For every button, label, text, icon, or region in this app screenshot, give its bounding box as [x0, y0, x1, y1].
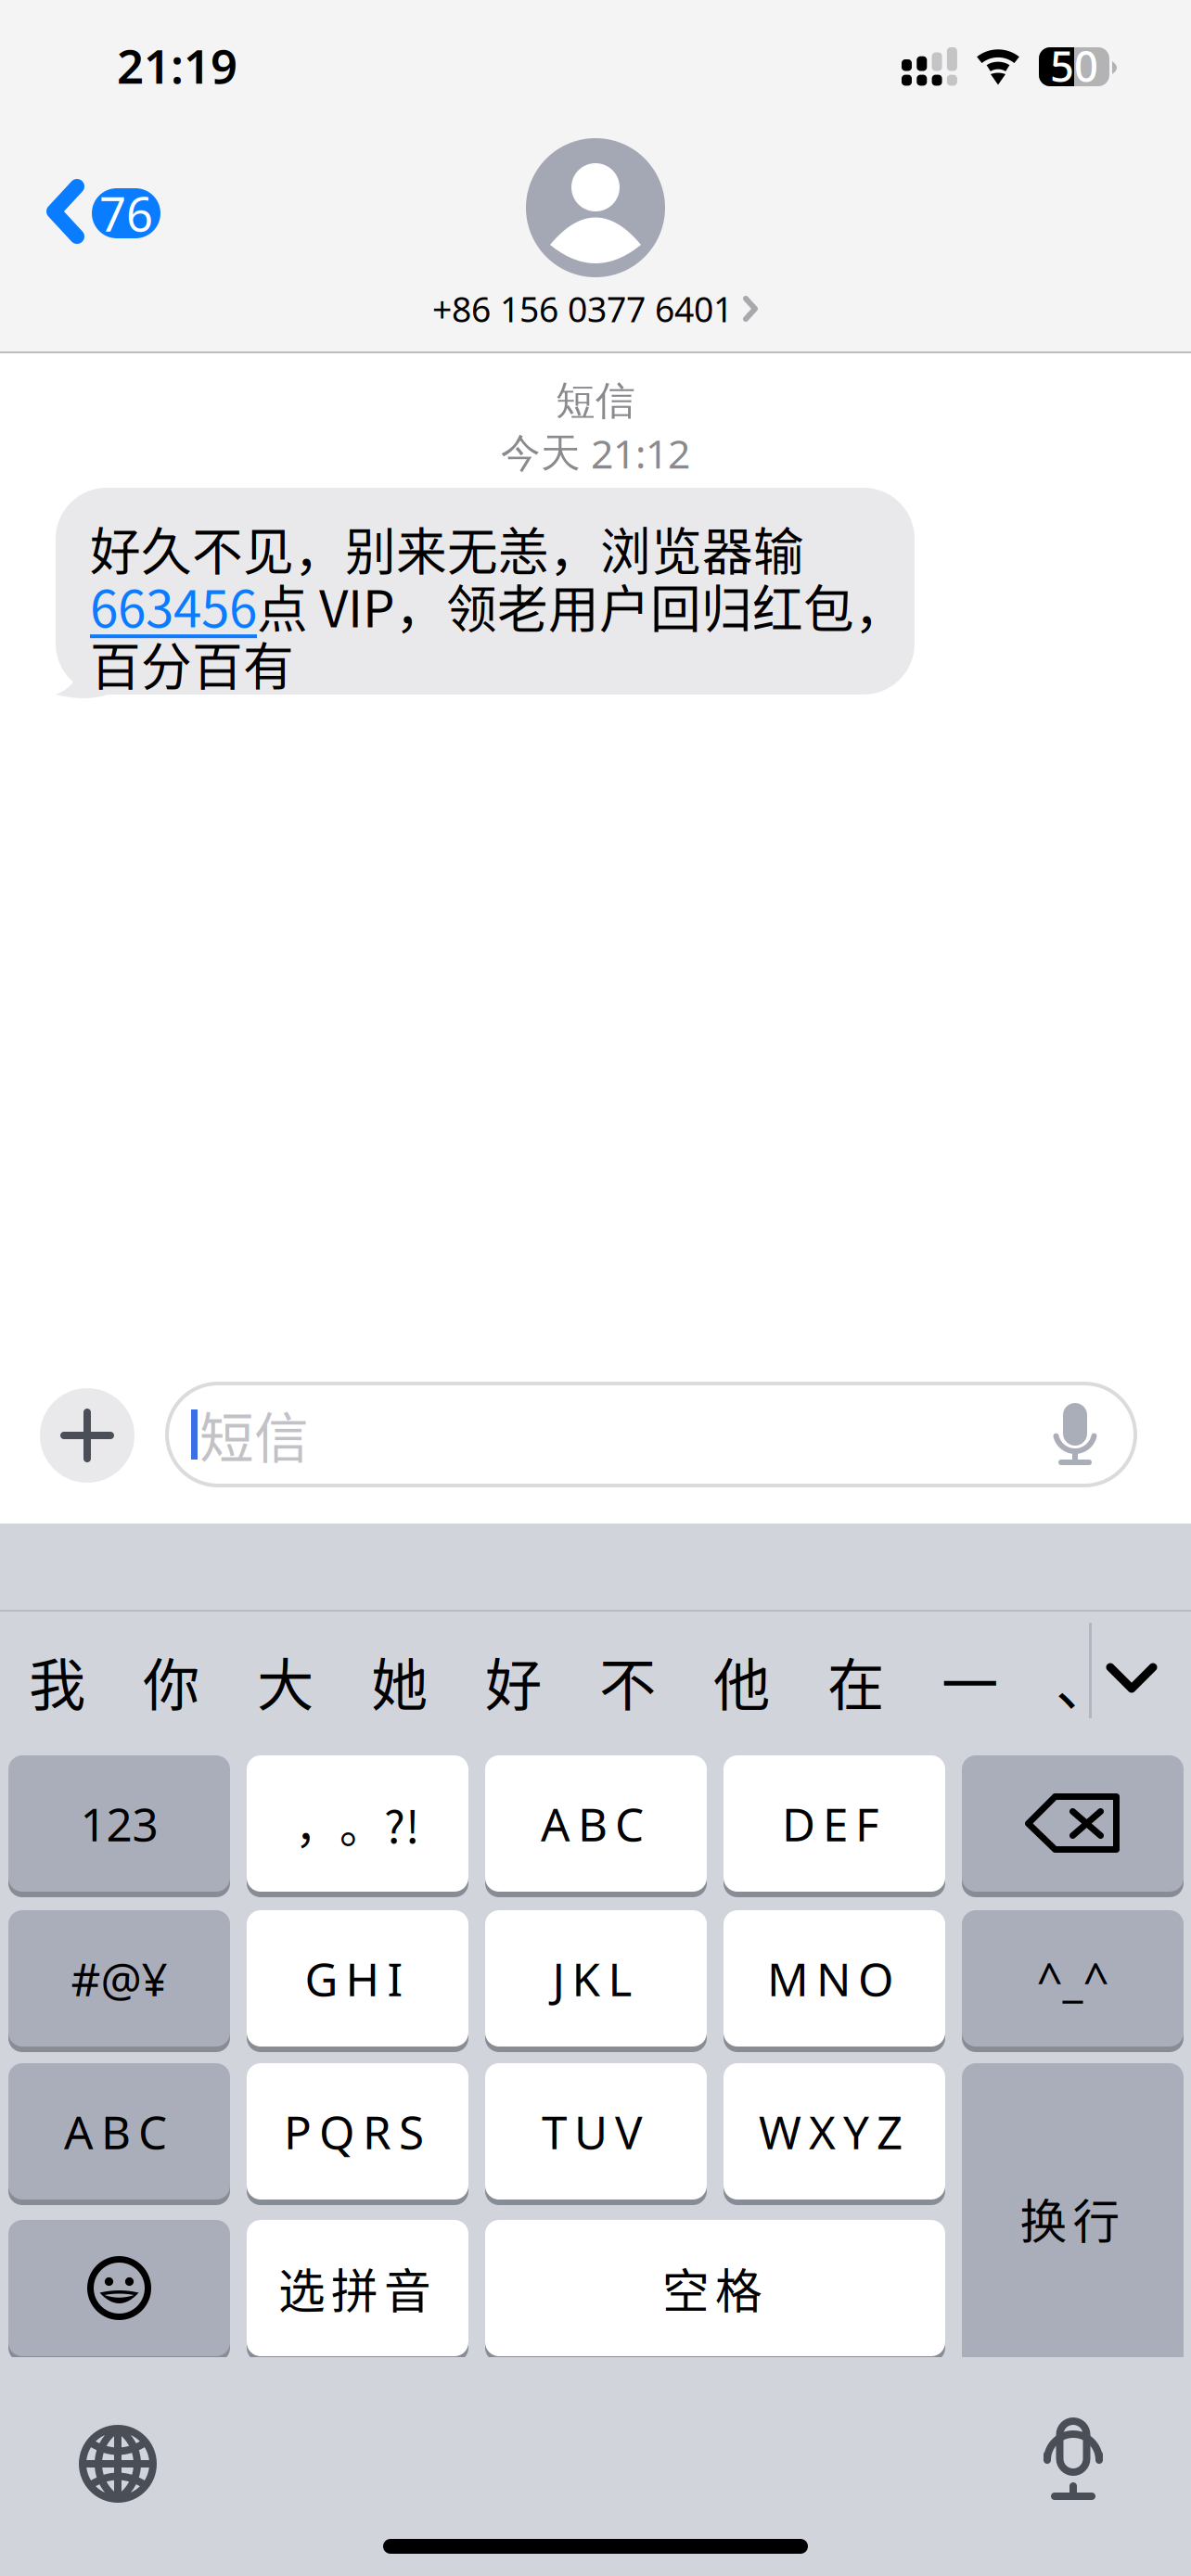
button[interactable]: ，。?! [247, 1755, 468, 1897]
staticText: ^_^ [1037, 1948, 1109, 2009]
button[interactable]: PQRS [247, 2063, 468, 2205]
staticText: TUV [542, 2101, 643, 2162]
button[interactable]: Message text field [167, 1384, 1135, 1486]
staticText: 百分百有 [90, 626, 294, 699]
button[interactable]: 我 [0, 1626, 114, 1737]
button[interactable]: 大 [228, 1626, 342, 1737]
button[interactable]: JKL [485, 1910, 707, 2052]
staticText: 在 [827, 1640, 884, 1722]
button[interactable]: ABC [8, 2063, 230, 2205]
staticText: 短信 [556, 376, 635, 425]
staticText: JKL [552, 1948, 632, 2009]
button[interactable]: 、 [1027, 1626, 1141, 1737]
staticText: #@¥ [71, 1948, 167, 2009]
staticText: 选拼音 [278, 2254, 431, 2322]
staticText: 一 [941, 1640, 998, 1722]
staticText: 50 [1050, 38, 1098, 94]
staticText: 他 [713, 1640, 770, 1722]
staticText: DEF [782, 1793, 879, 1854]
button[interactable]: 换行 [962, 2063, 1184, 2379]
button[interactable]: Dictation [1016, 2402, 1131, 2517]
staticText: +86 156 0377 6401 [432, 286, 733, 332]
staticText: 点 VIP，领老用户回归红包， [257, 568, 905, 642]
button[interactable]: TUV [485, 2063, 707, 2205]
staticText: 21:12 [591, 427, 690, 479]
button[interactable]: 123 [8, 1755, 230, 1897]
staticText: 76 [99, 182, 153, 245]
staticText: 你 [143, 1640, 199, 1722]
button[interactable]: Switch keyboard [60, 2406, 175, 2521]
button[interactable]: #@¥ [8, 1910, 230, 2052]
staticText: 123 [80, 1793, 158, 1854]
staticText: PQRS [284, 2101, 424, 2162]
staticText: WXYZ [759, 2101, 903, 2162]
staticText: ，。?! [295, 1791, 420, 1856]
button[interactable]: 不 [570, 1626, 685, 1737]
button[interactable]: 好 [456, 1626, 570, 1737]
button[interactable]: ^_^ [962, 1910, 1184, 2052]
staticText: 不 [599, 1640, 656, 1722]
button[interactable]: Hide keyboard [1086, 1626, 1179, 1737]
staticText: 21:19 [117, 34, 237, 97]
staticText: 我 [29, 1640, 85, 1722]
button[interactable]: DEF [724, 1755, 945, 1897]
staticText: 663456 [90, 568, 257, 642]
button[interactable]: 空格 [485, 2220, 945, 2362]
button[interactable]: 一 [913, 1626, 1027, 1737]
staticText: 她 [371, 1640, 428, 1722]
staticText: 换行 [1020, 2184, 1120, 2253]
staticText: ABC [64, 2101, 167, 2162]
staticText: 今天 [501, 429, 581, 477]
button[interactable]: +86 156 0377 6401 [410, 134, 781, 329]
staticText: 好 [485, 1640, 542, 1722]
staticText: 、 [1056, 1640, 1112, 1722]
button[interactable]: 选拼音 [247, 2220, 468, 2362]
button[interactable]: 76 [44, 168, 192, 270]
button[interactable]: GHI [247, 1910, 468, 2052]
button[interactable]: ABC [485, 1755, 707, 1897]
staticText: 短信 [199, 1395, 309, 1474]
staticText: MNO [767, 1948, 894, 2009]
staticText: ABC [541, 1793, 644, 1854]
button[interactable]: Emoji [8, 2220, 230, 2362]
button[interactable]: 她 [342, 1626, 456, 1737]
button[interactable]: 你 [114, 1626, 228, 1737]
button[interactable]: 他 [685, 1626, 799, 1737]
staticText: 好久不见，别来无恙，浏览器输 [90, 511, 804, 584]
staticText: 大 [257, 1640, 314, 1722]
button[interactable]: More options [40, 1388, 134, 1483]
button[interactable]: 在 [799, 1626, 913, 1737]
button[interactable]: WXYZ [724, 2063, 945, 2205]
button[interactable]: MNO [724, 1910, 945, 2052]
staticText: GHI [305, 1948, 403, 2009]
staticText: 空格 [662, 2254, 762, 2322]
button[interactable]: Delete [962, 1755, 1184, 1897]
